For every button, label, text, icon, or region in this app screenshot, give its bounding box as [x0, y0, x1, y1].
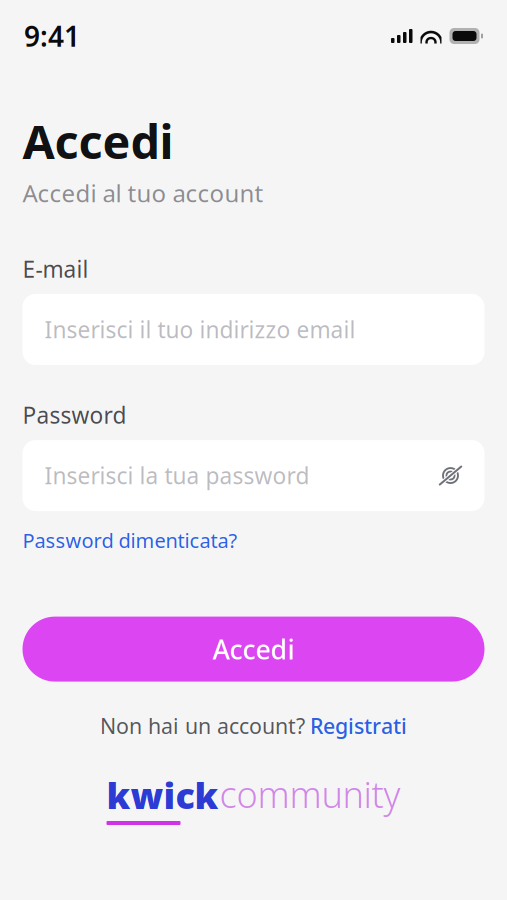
button[interactable]: Mostra password: [428, 453, 472, 497]
staticText: Password dimenticata?: [22, 527, 237, 554]
staticText: kwick: [106, 771, 218, 819]
button[interactable]: Password dimenticata?: [22, 521, 237, 554]
button[interactable]: Registrati: [310, 712, 407, 740]
staticText: community: [219, 770, 400, 818]
staticText: Accedi: [22, 110, 173, 172]
staticText: Registrati: [310, 712, 407, 740]
staticText: 9:41: [24, 17, 80, 55]
staticText: E-mail: [22, 254, 88, 284]
staticText: Inserisci il tuo indirizzo email: [44, 314, 355, 344]
staticText: Accedi: [212, 631, 294, 667]
staticText: Inserisci la tua password: [44, 460, 309, 491]
staticText: Password: [22, 400, 126, 430]
staticText: Non hai un account?: [100, 712, 305, 740]
staticText: Accedi al tuo account: [22, 177, 263, 209]
button[interactable]: Accedi: [22, 617, 484, 682]
